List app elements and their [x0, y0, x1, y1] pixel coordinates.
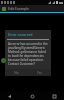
staticText: Edit Example	[8, 6, 29, 11]
staticText: An error has occurred in the java/lang/S…	[8, 42, 48, 66]
button[interactable]: No	[5, 69, 28, 76]
other: Status badge	[1, 58, 6, 63]
staticText: Yes	[37, 71, 42, 75]
staticText: Error occurred	[8, 32, 33, 37]
button[interactable]: Home	[28, 92, 37, 100]
other: App icon	[2, 7, 6, 11]
button[interactable]: Recents	[50, 92, 59, 100]
button[interactable]: Back	[5, 92, 14, 100]
button[interactable]: Yes	[28, 69, 51, 76]
button[interactable]: App icon	[0, 5, 64, 12]
staticText: No	[14, 71, 19, 75]
